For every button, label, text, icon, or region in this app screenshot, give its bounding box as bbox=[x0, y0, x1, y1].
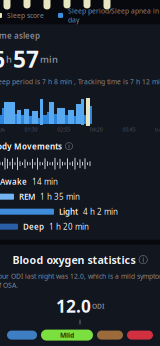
staticText: Sleep period is 7 h 8 min , Tracking tim… bbox=[0, 77, 160, 86]
staticText: 1 h 35 min bbox=[40, 191, 80, 202]
staticText: Your ODI last night was 12.0, which is a… bbox=[0, 272, 160, 290]
staticText: 57 bbox=[13, 44, 39, 74]
staticText: REM bbox=[19, 191, 35, 202]
staticText: Body Movements bbox=[0, 141, 62, 152]
staticText: Sleep period/Sleep apnea in the day bbox=[68, 6, 160, 24]
staticText: min bbox=[40, 53, 58, 65]
staticText: 05:45 bbox=[122, 126, 135, 133]
staticText: 00:06 bbox=[0, 126, 5, 133]
staticText: 1 h 20 min bbox=[49, 221, 89, 232]
staticText: 4 h 2 min bbox=[83, 206, 118, 217]
staticText: 04:20 bbox=[90, 126, 103, 133]
staticText: 6 bbox=[0, 44, 5, 74]
staticText: Light bbox=[59, 206, 78, 217]
staticText: Deep bbox=[23, 221, 44, 232]
staticText: h bbox=[6, 53, 12, 65]
staticText: 02:55 bbox=[57, 126, 70, 133]
staticText: ODI bbox=[92, 302, 104, 310]
staticText: 14 min bbox=[32, 176, 58, 187]
staticText: Awake bbox=[0, 176, 27, 187]
staticText: 12.0 bbox=[56, 295, 91, 318]
staticText: Time asleep bbox=[0, 30, 40, 41]
button[interactable]: About body movements bbox=[65, 141, 73, 151]
staticText: 07:18 bbox=[155, 126, 160, 133]
button[interactable]: About blood oxygen statistics bbox=[138, 254, 147, 265]
staticText: ⓘ bbox=[65, 141, 73, 151]
staticText: Mild bbox=[60, 331, 74, 340]
staticText: ⓘ bbox=[138, 254, 147, 265]
staticText: 01:30 bbox=[25, 126, 38, 133]
staticText: Blood oxygen statistics bbox=[12, 253, 135, 267]
staticText: Sleep score bbox=[7, 11, 44, 20]
